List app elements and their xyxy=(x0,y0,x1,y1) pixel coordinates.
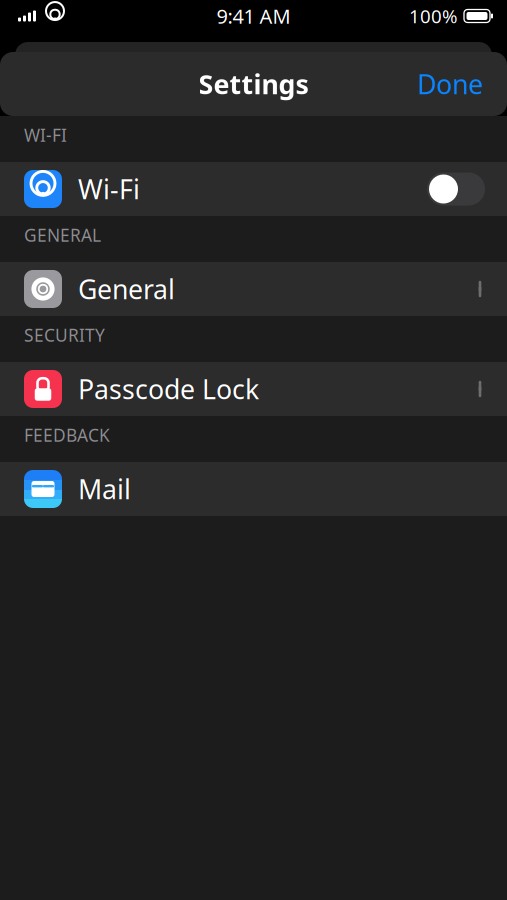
staticText: General xyxy=(78,271,175,307)
staticText: Done xyxy=(417,66,483,102)
staticText: Wi-Fi xyxy=(78,171,140,207)
button[interactable]: Wi-Fi xyxy=(0,162,507,216)
staticText: Settings xyxy=(198,66,308,102)
staticText: FEEDBACK xyxy=(24,423,110,446)
button[interactable]: Mail xyxy=(0,462,507,516)
staticText: 100% xyxy=(409,4,458,28)
button[interactable]: Done xyxy=(405,57,495,111)
button[interactable]: Passcode Lock xyxy=(0,362,507,416)
staticText: Mail xyxy=(78,471,131,507)
staticText: Passcode Lock xyxy=(78,371,259,407)
staticText: SECURITY xyxy=(24,323,105,346)
staticText: GENERAL xyxy=(24,223,101,246)
staticText: 9:41 AM xyxy=(216,3,290,29)
button[interactable]: General xyxy=(0,262,507,316)
staticText: WI-FI xyxy=(24,123,67,146)
